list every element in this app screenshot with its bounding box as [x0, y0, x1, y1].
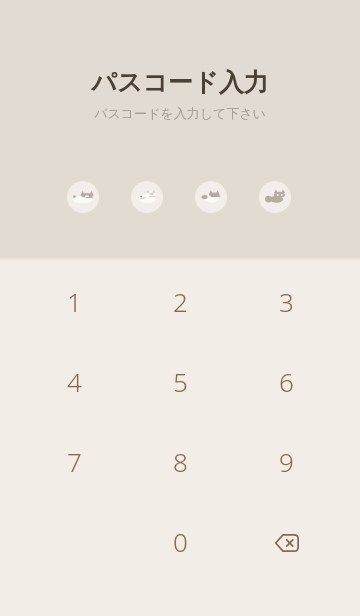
staticText: 8 [173, 444, 188, 479]
staticText: 9 [279, 444, 294, 479]
staticText: 6 [279, 364, 294, 399]
staticText: パスコードを入力して下さい [94, 105, 266, 121]
button[interactable]: 2 [127, 261, 233, 341]
button[interactable]: 5 [127, 341, 233, 421]
button[interactable]: 3 [233, 261, 339, 341]
staticText: 2 [173, 284, 188, 319]
button[interactable]: 4 [21, 341, 127, 421]
staticText: 0 [173, 524, 188, 559]
staticText: 7 [67, 444, 82, 479]
button[interactable]: Backspace [233, 501, 339, 581]
button[interactable]: 0 [127, 501, 233, 581]
staticText: 4 [67, 364, 82, 399]
button[interactable]: 7 [21, 421, 127, 501]
button[interactable]: 1 [21, 261, 127, 341]
staticText: 1 [67, 284, 82, 319]
button[interactable]: 9 [233, 421, 339, 501]
button[interactable]: 6 [233, 341, 339, 421]
staticText: 3 [279, 284, 294, 319]
staticText: 5 [173, 364, 188, 399]
button[interactable]: 8 [127, 421, 233, 501]
staticText: パスコード入力 [91, 67, 269, 98]
